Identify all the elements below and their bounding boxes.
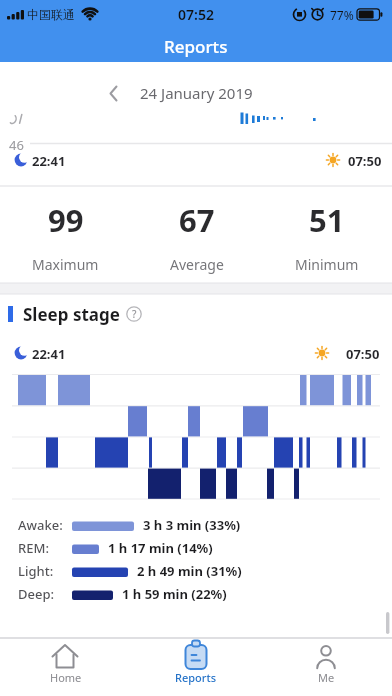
staticText: 51	[309, 199, 345, 241]
staticText: 3 h 3 min (33%)	[143, 516, 241, 534]
staticText: Sleep stage	[23, 303, 120, 326]
staticText: 46	[9, 136, 24, 154]
staticText: Reports	[175, 670, 217, 685]
staticText: Home	[50, 670, 82, 685]
staticText: 中国联通	[27, 7, 75, 22]
staticText: 1 h 17 min (14%)	[108, 539, 213, 557]
button[interactable]: Home	[0, 639, 131, 696]
staticText: 99	[48, 199, 84, 241]
button[interactable]: ?	[126, 306, 142, 322]
staticText: 07:52	[178, 5, 214, 24]
staticText: 1 h 59 min (22%)	[122, 585, 227, 603]
staticText: 07:50	[346, 345, 380, 363]
staticText: 77%	[330, 7, 354, 23]
staticText: 07:50	[348, 152, 382, 170]
staticText: REM:	[18, 539, 49, 557]
staticText: Minimum	[295, 255, 359, 274]
staticText: 67	[179, 199, 215, 241]
staticText: Deep:	[18, 585, 55, 603]
staticText: 22:41	[32, 345, 66, 363]
staticText: ?	[132, 307, 137, 321]
staticText: Reports	[164, 35, 228, 58]
staticText: Maximum	[32, 255, 99, 274]
button[interactable]: Reports	[131, 639, 261, 696]
staticText: 24 January 2019	[140, 83, 253, 103]
button[interactable]: 24 January 2019	[96, 78, 296, 108]
button[interactable]: Me	[261, 639, 392, 696]
staticText: Light:	[18, 562, 54, 580]
staticText: 22:41	[32, 152, 66, 170]
staticText: 2 h 49 min (31%)	[137, 562, 242, 580]
staticText: Awake:	[18, 516, 63, 534]
staticText: Me	[318, 670, 335, 685]
staticText: Average	[170, 255, 224, 274]
